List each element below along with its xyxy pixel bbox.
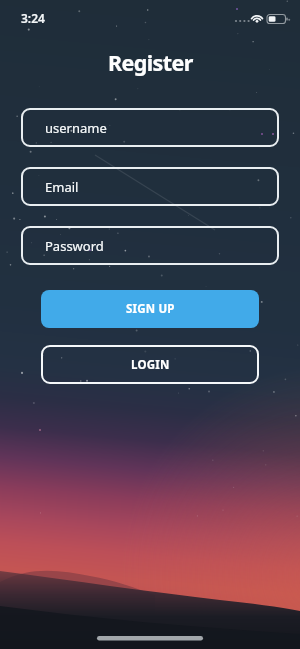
button[interactable]: Password bbox=[21, 226, 279, 265]
button[interactable]: LOGIN bbox=[41, 345, 259, 384]
button[interactable]: Email bbox=[21, 167, 279, 206]
button[interactable]: username bbox=[21, 108, 279, 147]
staticText: LOGIN bbox=[131, 357, 170, 373]
staticText: Email bbox=[45, 178, 79, 196]
button[interactable]: SIGN UP bbox=[41, 290, 259, 328]
staticText: username bbox=[45, 119, 107, 137]
staticText: Register bbox=[108, 48, 193, 77]
staticText: SIGN UP bbox=[126, 301, 175, 317]
staticText: Password bbox=[45, 237, 104, 255]
staticText: 3:24 bbox=[21, 10, 45, 26]
